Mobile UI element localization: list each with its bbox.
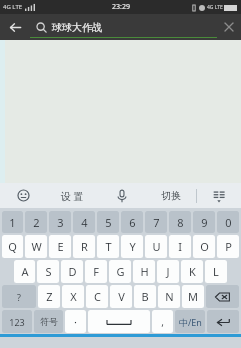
button[interactable]: E bbox=[49, 235, 71, 258]
button[interactable]: More options bbox=[197, 183, 241, 208]
button[interactable]: R bbox=[73, 235, 95, 258]
staticText: W bbox=[31, 239, 42, 254]
button[interactable]: 球球大作战 bbox=[30, 14, 217, 40]
button[interactable]: W bbox=[25, 235, 47, 258]
button[interactable]: S bbox=[37, 260, 59, 283]
button[interactable]: Q bbox=[2, 235, 23, 258]
staticText: X bbox=[70, 289, 77, 304]
staticText: F bbox=[93, 264, 99, 279]
staticText: E bbox=[57, 239, 64, 254]
staticText: A bbox=[21, 264, 29, 279]
button[interactable]: 1 bbox=[2, 211, 23, 233]
button[interactable]: D bbox=[61, 260, 83, 283]
staticText: D bbox=[68, 264, 77, 279]
button[interactable]: 9 bbox=[193, 211, 215, 233]
button[interactable]: Emoji bbox=[0, 183, 47, 208]
button[interactable]: 6 bbox=[121, 211, 143, 233]
button[interactable]: , bbox=[152, 310, 173, 333]
button[interactable]: J bbox=[157, 260, 179, 283]
button[interactable]: 切换 bbox=[145, 183, 196, 208]
staticText: 设 置 bbox=[61, 189, 84, 203]
button[interactable]: 5 bbox=[97, 211, 119, 233]
staticText: Q bbox=[8, 239, 17, 254]
staticText: O bbox=[200, 239, 209, 254]
staticText: Z bbox=[46, 289, 53, 304]
button[interactable]: 8 bbox=[169, 211, 191, 233]
staticText: J bbox=[166, 264, 170, 279]
staticText: 9 bbox=[201, 215, 208, 230]
button[interactable]: H bbox=[133, 260, 155, 283]
staticText: 切换 bbox=[161, 189, 181, 202]
button[interactable]: Z bbox=[38, 285, 60, 308]
button[interactable]: 4 bbox=[73, 211, 95, 233]
staticText: 1 bbox=[9, 215, 16, 230]
staticText: R bbox=[81, 239, 88, 254]
staticText: ? bbox=[17, 291, 21, 303]
button[interactable]: Space bbox=[88, 310, 150, 333]
button[interactable]: X bbox=[62, 285, 84, 308]
staticText: 2 bbox=[33, 215, 40, 230]
staticText: 4G LTE bbox=[207, 4, 223, 11]
staticText: 5 bbox=[105, 215, 112, 230]
staticText: K bbox=[189, 264, 196, 279]
button[interactable]: V bbox=[110, 285, 132, 308]
staticText: 3 bbox=[57, 215, 64, 230]
staticText: V bbox=[118, 289, 125, 304]
button[interactable]: 7 bbox=[145, 211, 167, 233]
staticText: L bbox=[213, 264, 219, 279]
button[interactable]: G bbox=[109, 260, 131, 283]
staticText: 中/En bbox=[179, 316, 202, 328]
button[interactable]: 0 bbox=[217, 211, 239, 233]
staticText: C bbox=[94, 289, 101, 304]
staticText: 7 bbox=[153, 215, 160, 230]
button[interactable]: Clear bbox=[217, 14, 241, 40]
button[interactable]: · bbox=[65, 310, 86, 333]
button[interactable]: Backspace bbox=[206, 285, 239, 308]
button[interactable]: N bbox=[158, 285, 180, 308]
staticText: 123 bbox=[9, 316, 25, 328]
button[interactable]: Back bbox=[0, 14, 30, 40]
staticText: B bbox=[141, 289, 149, 304]
button[interactable]: ? bbox=[2, 285, 36, 308]
button[interactable]: 符号 bbox=[34, 310, 63, 333]
button[interactable]: C bbox=[86, 285, 108, 308]
button[interactable]: O bbox=[193, 235, 215, 258]
staticText: P bbox=[225, 239, 232, 254]
staticText: Y bbox=[129, 239, 136, 254]
button[interactable]: Y bbox=[121, 235, 143, 258]
button[interactable]: K bbox=[181, 260, 203, 283]
staticText: 23:29 bbox=[112, 2, 130, 12]
button[interactable]: I bbox=[169, 235, 191, 258]
button[interactable]: M bbox=[182, 285, 204, 308]
button[interactable]: P bbox=[217, 235, 239, 258]
staticText: · bbox=[74, 314, 77, 329]
button[interactable]: F bbox=[85, 260, 107, 283]
staticText: 6 bbox=[129, 215, 136, 230]
staticText: 8 bbox=[177, 215, 184, 230]
staticText: 4 bbox=[81, 215, 88, 230]
staticText: T bbox=[105, 239, 112, 254]
button[interactable]: Voice input bbox=[98, 183, 145, 208]
staticText: M bbox=[188, 289, 198, 304]
button[interactable]: 设 置 bbox=[47, 183, 98, 208]
button[interactable]: 2 bbox=[25, 211, 47, 233]
button[interactable]: L bbox=[205, 260, 227, 283]
staticText: N bbox=[165, 289, 174, 304]
staticText: 符号 bbox=[40, 316, 58, 327]
button[interactable]: 3 bbox=[49, 211, 71, 233]
staticText: I bbox=[178, 239, 182, 254]
staticText: H bbox=[140, 264, 149, 279]
button[interactable]: T bbox=[97, 235, 119, 258]
button[interactable]: B bbox=[134, 285, 156, 308]
staticText: 球球大作战 bbox=[52, 21, 102, 34]
button[interactable]: Enter bbox=[207, 310, 239, 333]
staticText: G bbox=[116, 264, 125, 279]
button[interactable]: U bbox=[145, 235, 167, 258]
staticText: 0 bbox=[225, 215, 232, 230]
staticText: , bbox=[161, 315, 164, 329]
button[interactable]: A bbox=[14, 260, 35, 283]
staticText: U bbox=[152, 239, 161, 254]
button[interactable]: 中/En bbox=[175, 310, 205, 333]
button[interactable]: 123 bbox=[2, 310, 32, 333]
staticText: S bbox=[45, 264, 52, 279]
